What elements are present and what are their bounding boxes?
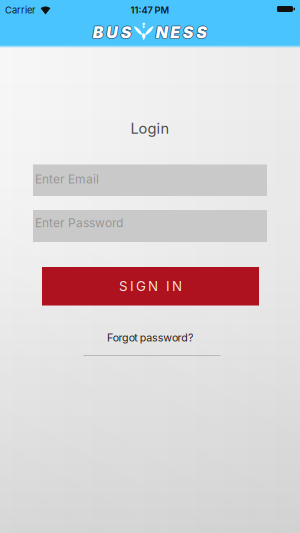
staticText: Enter Password bbox=[35, 216, 123, 230]
staticText: Login bbox=[130, 120, 169, 137]
button[interactable]: Enter Email bbox=[33, 164, 267, 196]
staticText: NESS bbox=[156, 24, 207, 43]
button[interactable]: SIGN IN bbox=[42, 267, 259, 305]
staticText: SIGN IN bbox=[119, 278, 182, 294]
staticText: Forgot password? bbox=[107, 331, 193, 344]
staticText: BUS bbox=[93, 23, 132, 42]
staticText: BUS bbox=[93, 22, 132, 41]
staticText: NESS bbox=[155, 23, 207, 42]
staticText: Carrier bbox=[5, 4, 36, 15]
staticText: NESS bbox=[156, 22, 207, 41]
staticText: 11:47 PM bbox=[130, 4, 169, 15]
staticText: BUS bbox=[93, 23, 132, 42]
staticText: NESS bbox=[156, 23, 208, 42]
staticText: BUS bbox=[93, 24, 132, 43]
button[interactable]: Enter Password bbox=[33, 210, 267, 242]
button[interactable]: Forgot password? bbox=[107, 331, 193, 344]
staticText: Enter Email bbox=[35, 172, 99, 186]
staticText: BUS bbox=[92, 23, 131, 42]
staticText: NESS bbox=[156, 23, 207, 42]
